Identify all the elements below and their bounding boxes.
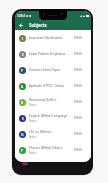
staticText: 80065 [74,84,83,88]
staticText: 80065 [74,148,83,152]
staticText: Notes [29,103,37,107]
staticText: E [22,52,24,57]
staticText: English (Affine) Language - [29,114,69,118]
button[interactable]: R [15,94,91,110]
button[interactable]: G [15,126,91,142]
staticText: G [21,132,24,137]
staticText: Exam Pattern & Syllabus [29,52,66,56]
staticText: Important Notification [29,36,63,40]
button[interactable]: Back [15,20,26,30]
staticText: 12:04 [17,14,25,18]
staticText: Aptitude (STPQ) - Notes [29,84,65,88]
button[interactable]: A [15,78,91,94]
staticText: Reasoning (Suffix) - [29,98,58,102]
staticText: Subjects [29,22,47,28]
button[interactable]: I [15,30,91,46]
staticText: 80065 [74,132,83,136]
staticText: E [22,116,24,121]
staticText: Notes [29,135,37,139]
staticText: P [21,68,24,73]
staticText: Notes [29,119,37,123]
button[interactable]: E [15,46,91,62]
staticText: Physics (Affine) Object - [29,146,64,150]
staticText: 80065 [74,68,83,72]
staticText: 80065 [74,116,83,120]
staticText: 80065 [74,100,83,104]
staticText: P [21,148,24,153]
staticText: I [22,36,24,41]
button[interactable]: P [15,62,91,78]
button[interactable]: E [15,110,91,126]
staticText: SSC oe (Affine) - [29,130,53,134]
staticText: R [21,100,24,105]
staticText: Notes [29,151,37,155]
button[interactable]: P [15,142,91,158]
staticText: 80065 [74,36,83,40]
staticText: 80065 [74,52,83,56]
staticText: Previous Years Paper [29,68,61,72]
staticText: A [21,84,24,89]
